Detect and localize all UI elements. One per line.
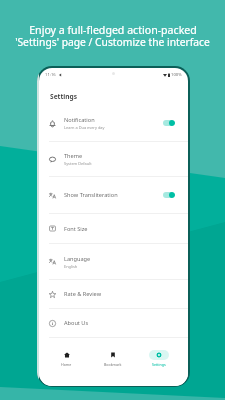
- button[interactable]: Toggle Show Transliteration: [163, 192, 175, 198]
- staticText: Rate & Review: [64, 290, 102, 298]
- button[interactable]: Home: [43, 340, 90, 377]
- button[interactable]: Language: [39, 244, 188, 279]
- staticText: English: [64, 264, 78, 269]
- staticText: Notification: [64, 116, 95, 124]
- staticText: Language: [64, 255, 91, 263]
- staticText: Home: [61, 362, 72, 367]
- staticText: System Default: [64, 161, 92, 166]
- button[interactable]: Show Transliteration: [39, 177, 188, 213]
- button[interactable]: Notification: [39, 105, 188, 141]
- button[interactable]: Font Size: [39, 214, 188, 243]
- staticText: Settings: [50, 92, 78, 101]
- staticText: Settings: [152, 362, 166, 367]
- button[interactable]: Rate & Review: [39, 280, 188, 308]
- staticText: About Us: [64, 319, 89, 327]
- staticText: Theme: [64, 152, 83, 160]
- staticText: Font Size: [64, 225, 88, 233]
- button[interactable]: About Us: [39, 309, 188, 337]
- button[interactable]: Bookmark: [90, 340, 136, 377]
- staticText: Enjoy a full-fledged action-packed: [29, 23, 197, 37]
- button[interactable]: Theme: [39, 142, 188, 176]
- button[interactable]: Settings: [136, 340, 182, 377]
- staticText: Show Transliteration: [64, 191, 118, 199]
- staticText: 100%: [171, 72, 182, 78]
- button[interactable]: Toggle Notification: [163, 120, 175, 126]
- staticText: 11:16: [45, 72, 56, 78]
- staticText: Learn a Dua every day: [64, 125, 105, 130]
- staticText: 'Settings' page / Customize the interfac…: [15, 35, 210, 49]
- staticText: Bookmark: [104, 362, 122, 367]
